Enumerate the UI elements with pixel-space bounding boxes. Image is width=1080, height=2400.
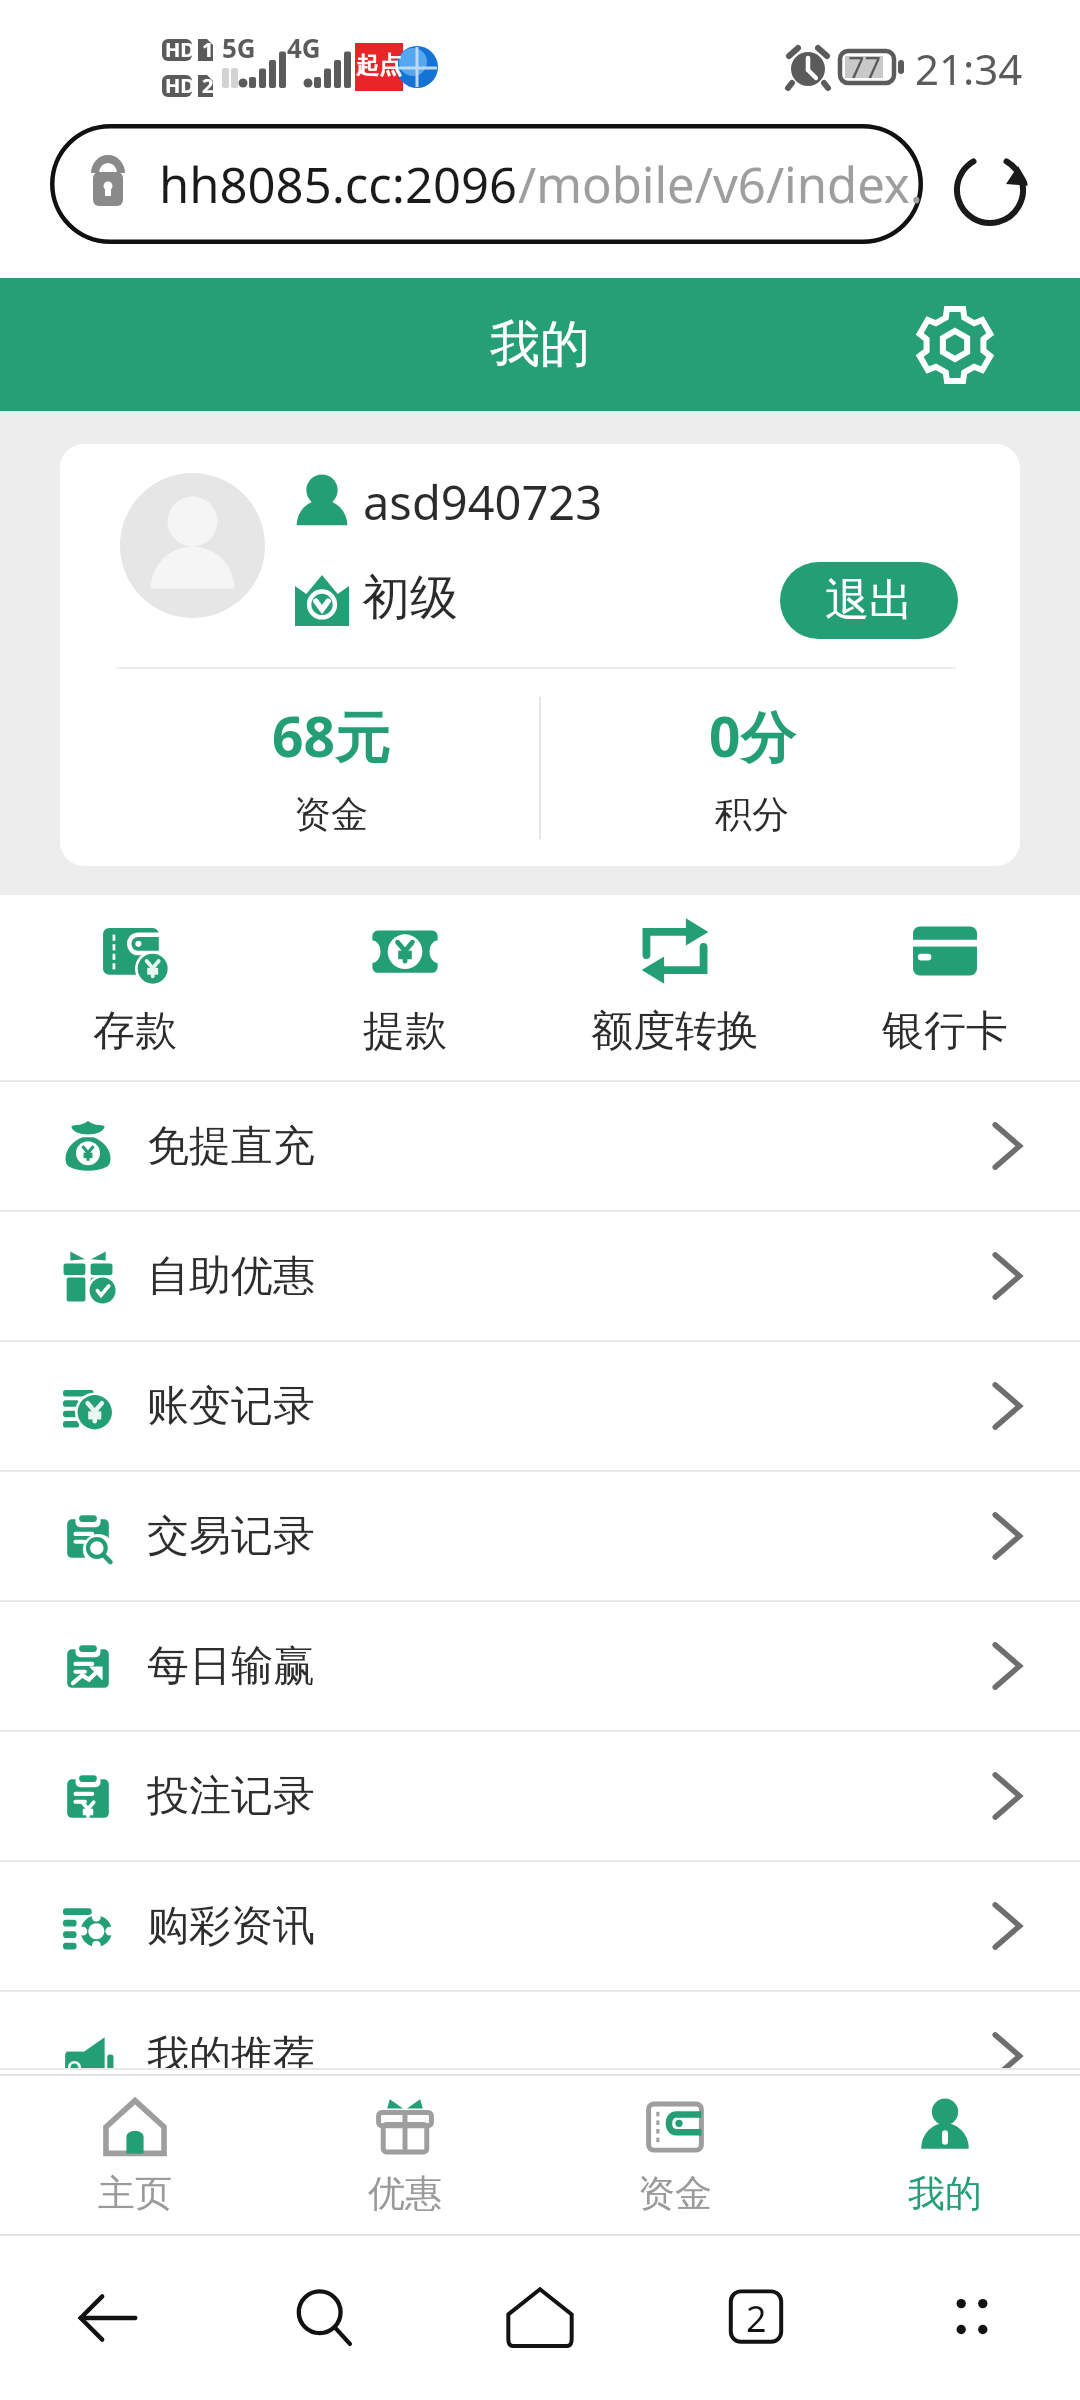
button[interactable]: Search xyxy=(216,2236,432,2400)
staticText: 我的 xyxy=(490,313,590,376)
button[interactable]: 0分 xyxy=(512,685,992,851)
staticText: 我的 xyxy=(908,2170,982,2217)
staticText: 免提直充 xyxy=(147,1120,315,1173)
staticText: asd940723 xyxy=(363,470,603,534)
staticText: 资金 xyxy=(638,2170,712,2217)
staticText: 优惠 xyxy=(368,2170,442,2217)
staticText: 银行卡 xyxy=(882,1005,1008,1058)
button[interactable]: 我的 xyxy=(810,2076,1080,2234)
button[interactable]: Reload xyxy=(952,152,1028,228)
button[interactable]: More xyxy=(864,2236,1080,2400)
button[interactable]: 免提直充 xyxy=(0,1082,1080,1210)
staticText: 交易记录 xyxy=(147,1510,315,1563)
button[interactable]: 资金 xyxy=(540,2076,810,2234)
staticText: 额度转换 xyxy=(591,1005,759,1058)
staticText: 0分 xyxy=(709,698,796,773)
staticText: /mobile/v6/index.c xyxy=(518,151,923,218)
staticText: 自助优惠 xyxy=(147,1250,315,1303)
button[interactable]: 退出 xyxy=(780,562,958,639)
staticText: 2 xyxy=(746,2294,767,2343)
button[interactable]: 主页 xyxy=(0,2076,270,2234)
button[interactable]: 自助优惠 xyxy=(0,1212,1080,1340)
staticText: 投注记录 xyxy=(147,1770,315,1823)
button[interactable]: Tabs xyxy=(648,2236,864,2400)
button[interactable]: 提款 xyxy=(270,895,540,1080)
button[interactable]: 银行卡 xyxy=(810,895,1080,1080)
staticText: HD xyxy=(165,36,195,63)
staticText: 初级 xyxy=(362,568,458,628)
staticText: 提款 xyxy=(363,1005,447,1058)
staticText: HD xyxy=(165,72,195,99)
button[interactable]: 额度转换 xyxy=(540,895,810,1080)
button[interactable]: 存款 xyxy=(0,895,270,1080)
staticText: 退出 xyxy=(825,573,913,628)
staticText: 21:34 xyxy=(915,40,1023,97)
staticText: 1 xyxy=(202,36,214,63)
button[interactable]: Settings xyxy=(907,297,1003,393)
staticText: hh8085.cc:2096 xyxy=(159,151,518,218)
staticText: 68元 xyxy=(272,698,390,773)
staticText: 5G xyxy=(222,30,256,65)
button[interactable]: 优惠 xyxy=(270,2076,540,2234)
button[interactable]: 购彩资讯 xyxy=(0,1862,1080,1990)
button[interactable]: 账变记录 xyxy=(0,1342,1080,1470)
staticText: 每日输赢 xyxy=(147,1640,315,1693)
button[interactable]: hh8085.cc:2096 xyxy=(50,124,923,244)
staticText: 我的推荐 xyxy=(147,2030,315,2068)
button[interactable]: 我的推荐 xyxy=(0,2018,1080,2068)
staticText: 资金 xyxy=(294,791,368,838)
staticText: 购彩资讯 xyxy=(147,1900,315,1953)
staticText: 77 xyxy=(848,47,882,86)
button[interactable]: Back xyxy=(0,2236,216,2400)
staticText: 2 xyxy=(202,72,214,99)
button[interactable]: 投注记录 xyxy=(0,1732,1080,1860)
staticText: 存款 xyxy=(93,1005,177,1058)
staticText: 账变记录 xyxy=(147,1380,315,1433)
button[interactable]: 68元 xyxy=(60,685,602,851)
button[interactable]: Home xyxy=(432,2236,648,2400)
button[interactable]: 交易记录 xyxy=(0,1472,1080,1600)
staticText: 起点 xyxy=(356,51,402,80)
staticText: 4G xyxy=(287,30,321,65)
staticText: 主页 xyxy=(98,2170,172,2217)
button[interactable]: 每日输赢 xyxy=(0,1602,1080,1730)
staticText: 积分 xyxy=(715,791,789,838)
